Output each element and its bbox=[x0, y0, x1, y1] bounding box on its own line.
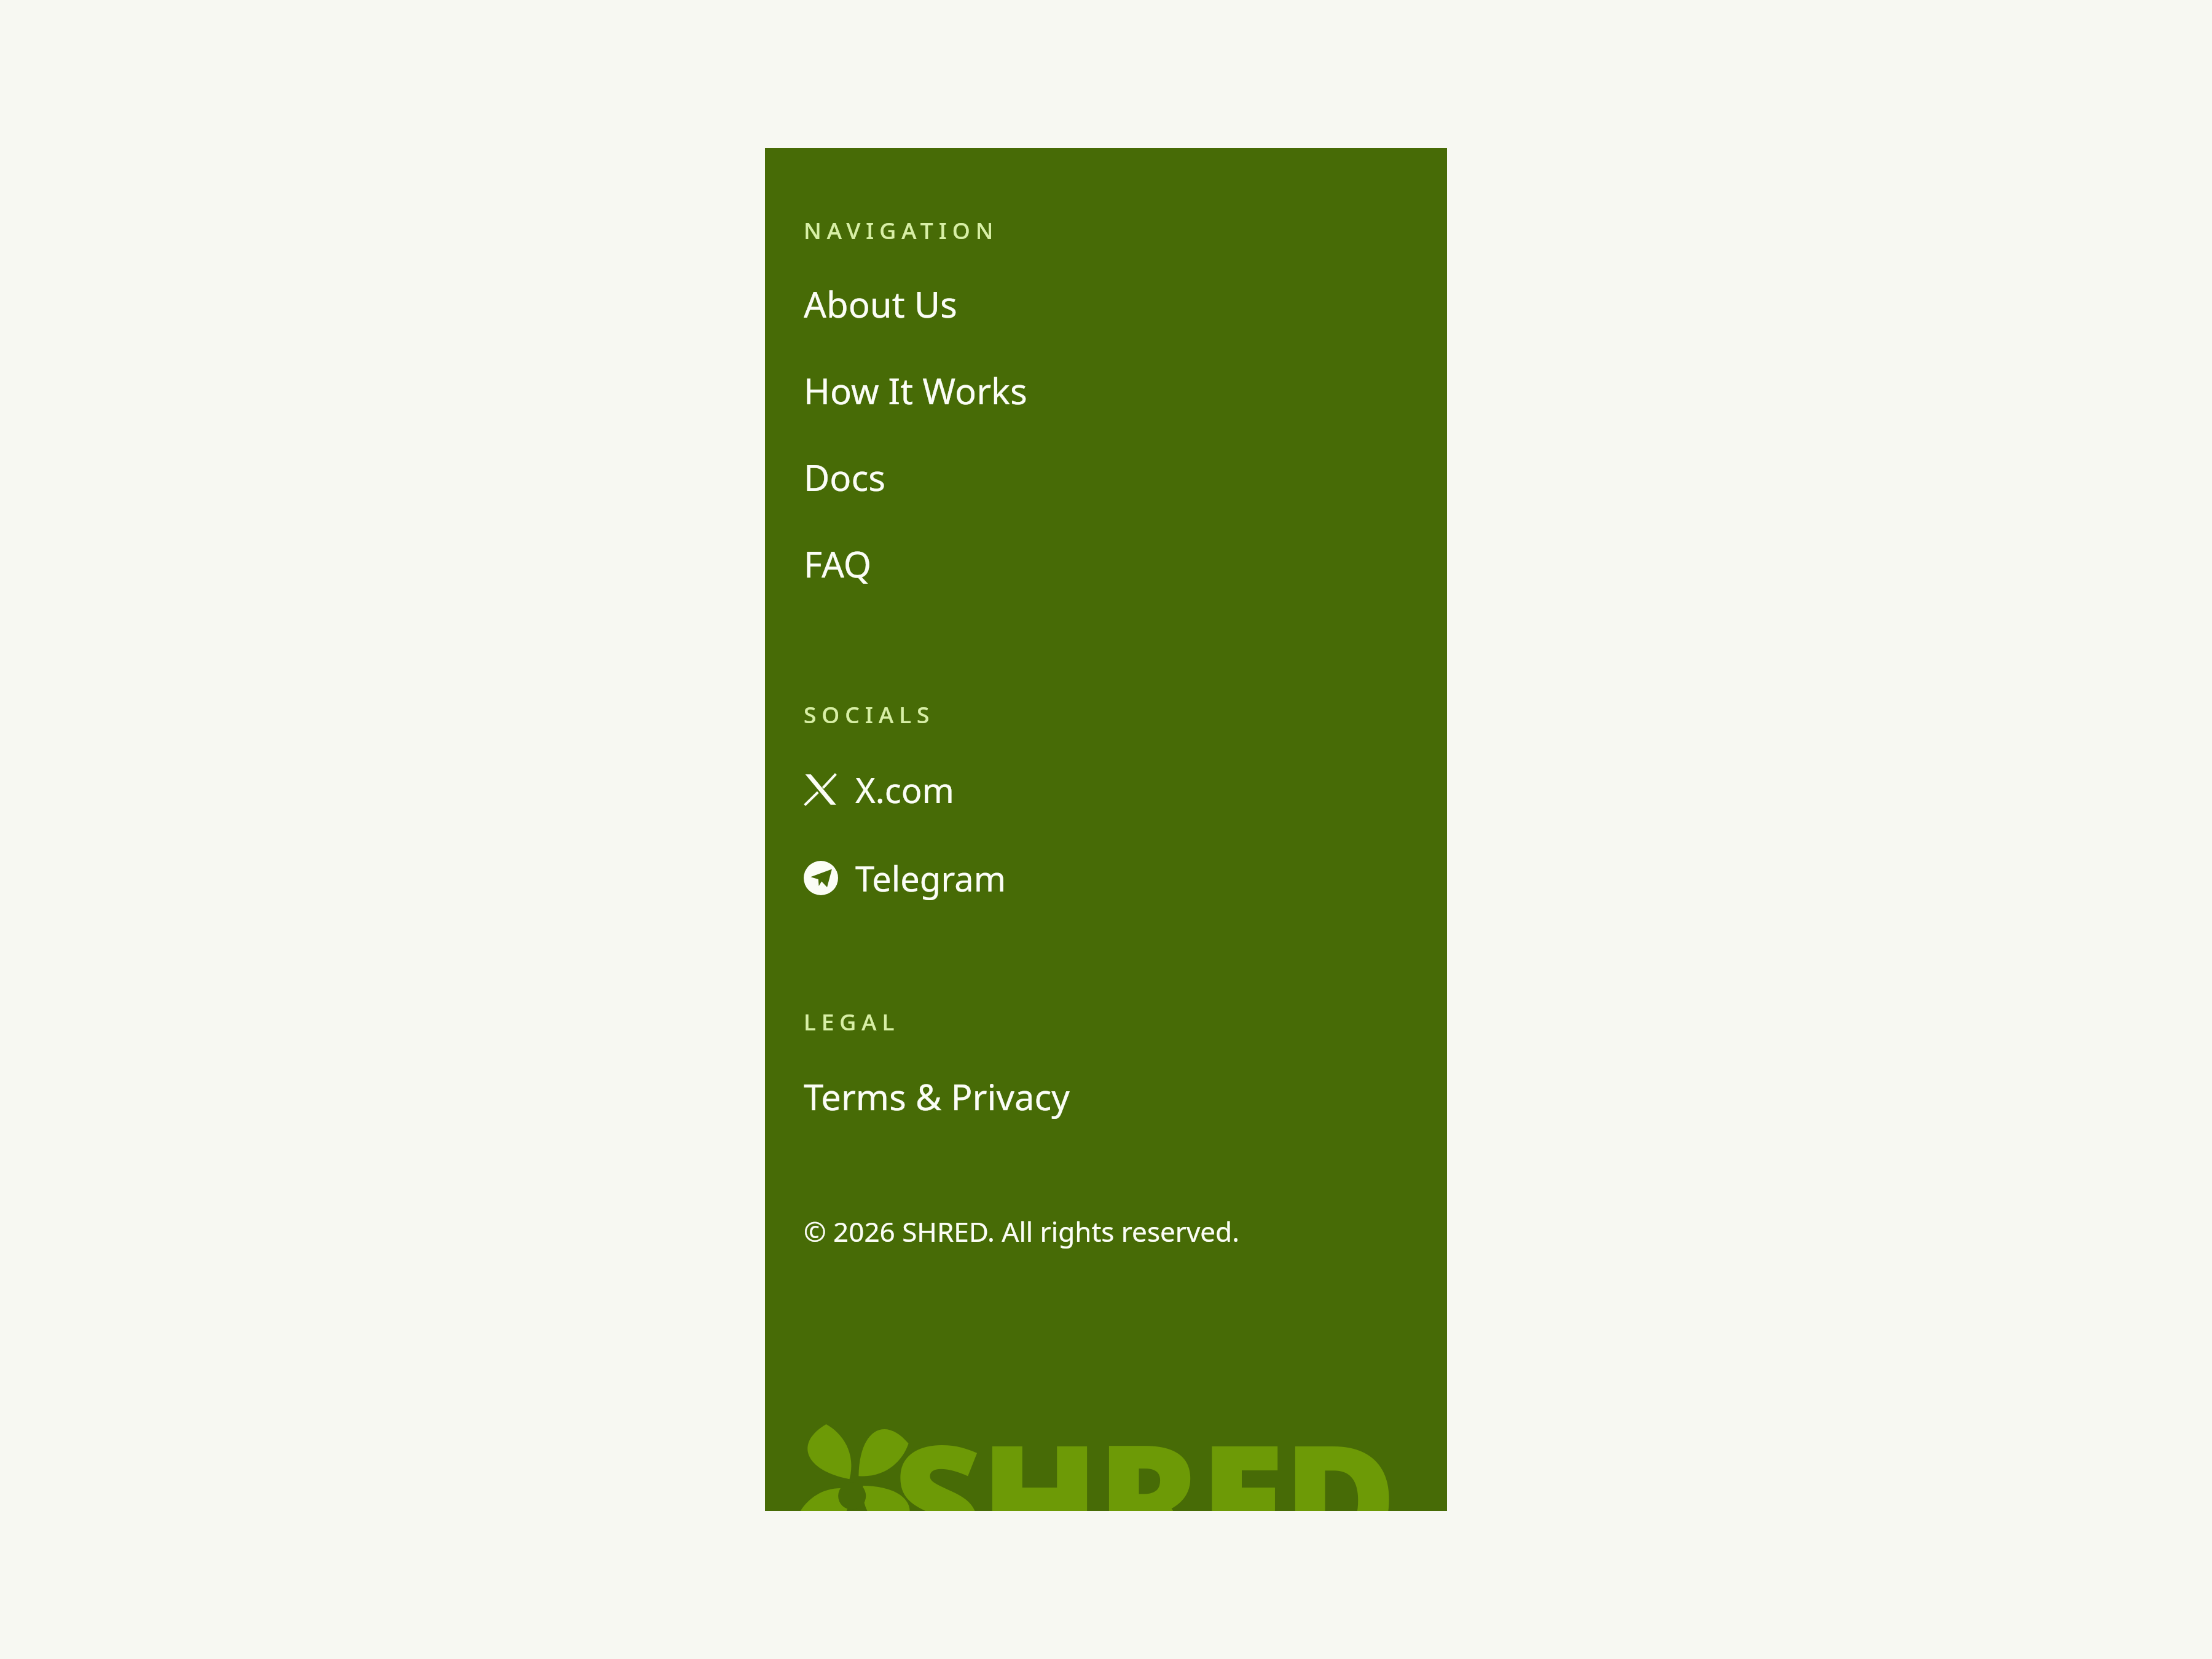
staticText: © 2026 SHRED. All rights reserved. bbox=[804, 1213, 1239, 1250]
staticText: Terms & Privacy bbox=[804, 1072, 1070, 1121]
staticText: Telegram bbox=[855, 855, 1006, 901]
staticText: LEGAL bbox=[804, 1006, 900, 1037]
button[interactable]: About Us bbox=[804, 280, 1418, 328]
button[interactable]: X.com bbox=[804, 766, 1418, 813]
button[interactable]: FAQ bbox=[804, 539, 1418, 588]
staticText: Docs bbox=[804, 453, 886, 501]
button[interactable]: How It Works bbox=[804, 366, 1418, 415]
button[interactable]: Terms & Privacy bbox=[804, 1072, 1418, 1121]
button[interactable]: Docs bbox=[804, 453, 1418, 501]
staticText: NAVIGATION bbox=[804, 214, 999, 245]
staticText: SOCIALS bbox=[804, 699, 935, 729]
staticText: FAQ bbox=[804, 539, 872, 588]
staticText: How It Works bbox=[804, 366, 1027, 415]
staticText: SHRED bbox=[893, 1392, 1395, 1511]
staticText: About Us bbox=[804, 280, 957, 328]
staticText: X.com bbox=[855, 766, 954, 813]
button[interactable]: Telegram bbox=[804, 855, 1418, 901]
